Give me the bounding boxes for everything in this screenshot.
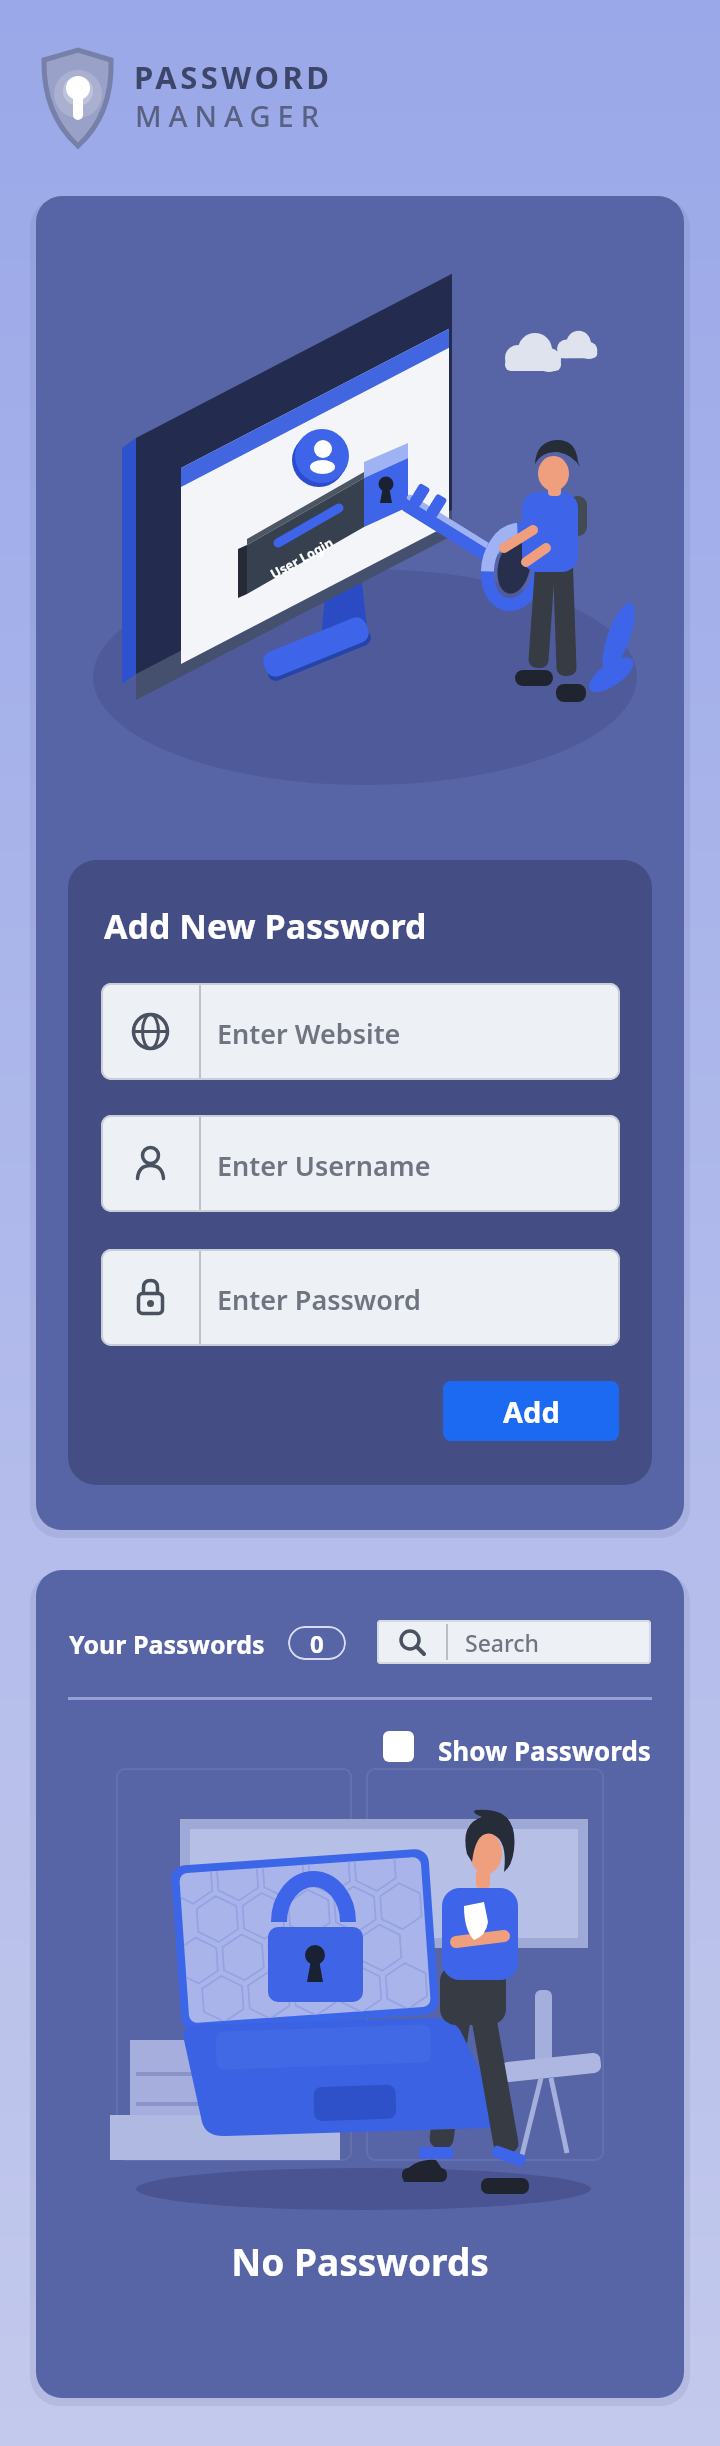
staticText: Show Passwords xyxy=(438,1733,651,1768)
button[interactable]: Add xyxy=(443,1381,619,1441)
button[interactable]: Enter Password xyxy=(101,1249,620,1346)
button[interactable]: Enter Username xyxy=(101,1115,620,1212)
staticText: Add xyxy=(503,1392,560,1431)
staticText: 0 xyxy=(310,1627,324,1660)
staticText: Search xyxy=(465,1627,539,1658)
staticText: Add New Password xyxy=(104,903,427,949)
staticText: PASSWORD xyxy=(134,56,333,98)
button[interactable]: Search xyxy=(377,1620,651,1664)
button[interactable]: Enter Website xyxy=(101,983,620,1080)
staticText: Enter Website xyxy=(217,1015,401,1052)
button[interactable] xyxy=(383,1731,414,1762)
staticText: MANAGER xyxy=(135,96,327,135)
staticText: Enter Password xyxy=(217,1281,421,1318)
staticText: User Login xyxy=(267,533,337,583)
staticText: Your Passwords xyxy=(69,1627,265,1661)
staticText: Enter Username xyxy=(217,1147,431,1184)
staticText: No Passwords xyxy=(36,2236,684,2296)
